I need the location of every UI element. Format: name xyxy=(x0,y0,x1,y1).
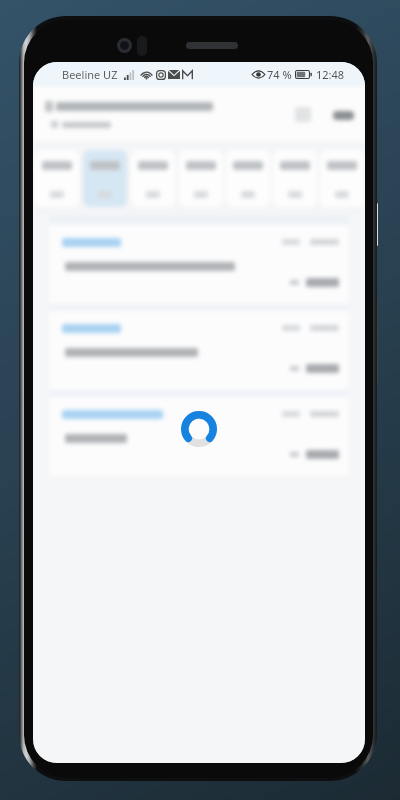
staticText: Beeline UZ xyxy=(62,67,118,82)
staticText: 74 % xyxy=(267,67,292,82)
button[interactable] xyxy=(177,143,224,215)
button[interactable] xyxy=(81,143,129,215)
button[interactable] xyxy=(33,143,81,215)
button[interactable] xyxy=(129,143,177,215)
button[interactable] xyxy=(49,311,349,390)
button[interactable] xyxy=(271,143,318,215)
button[interactable] xyxy=(49,225,349,304)
button[interactable] xyxy=(49,397,349,476)
button[interactable]: More options xyxy=(325,97,361,133)
staticText: 12:48 xyxy=(316,67,345,82)
button[interactable]: Calendar xyxy=(285,96,321,132)
button[interactable] xyxy=(224,143,271,215)
button[interactable] xyxy=(318,143,365,215)
